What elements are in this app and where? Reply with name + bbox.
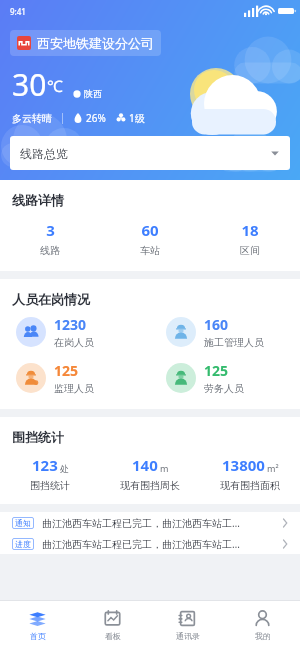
staticText: 车站	[140, 244, 160, 257]
button[interactable]: 125	[16, 361, 150, 395]
staticText: 曲江池西车站工程已完工，曲江池西车站工…	[42, 516, 280, 530]
button[interactable]: 1230	[16, 315, 150, 349]
staticText: m²	[267, 462, 279, 474]
button[interactable]: 我的	[225, 601, 300, 649]
button[interactable]: 线路总览	[10, 136, 290, 170]
staticText: 13800	[222, 455, 265, 475]
staticText: 围挡统计	[30, 479, 70, 492]
staticText: ℃	[47, 75, 63, 97]
staticText: 140	[132, 455, 158, 475]
button[interactable]: 60	[100, 220, 200, 257]
button[interactable]: 160	[166, 315, 300, 349]
staticText: 线路	[40, 244, 60, 257]
button[interactable]: 看板	[75, 601, 150, 649]
staticText: 60	[141, 220, 159, 240]
button[interactable]: 3	[0, 220, 100, 257]
staticText: 陕西	[84, 88, 102, 99]
staticText: 进度	[15, 539, 31, 549]
staticText: 看板	[105, 631, 121, 641]
staticText: 在岗人员	[54, 336, 94, 349]
staticText: 线路总览	[20, 146, 68, 161]
button[interactable]: 通知	[0, 512, 300, 533]
button[interactable]: 首页	[0, 601, 75, 649]
staticText: 18	[241, 220, 259, 240]
staticText: 线路详情	[12, 192, 64, 208]
staticText: 现有围挡周长	[120, 479, 180, 492]
staticText: 125	[204, 361, 229, 380]
button[interactable]: 西安地铁建设分公司	[10, 30, 161, 56]
button[interactable]: 通讯录	[150, 601, 225, 649]
staticText: 现有围挡面积	[220, 479, 280, 492]
staticText: 监理人员	[54, 382, 94, 395]
staticText: 人员在岗情况	[12, 291, 90, 307]
staticText: 1230	[54, 315, 87, 334]
staticText: 3	[46, 220, 55, 240]
staticText: 通讯录	[176, 631, 200, 641]
staticText: 通知	[15, 518, 31, 528]
staticText: 西安地铁建设分公司	[37, 35, 154, 51]
staticText: 施工管理人员	[204, 336, 264, 349]
staticText: 26%	[86, 111, 106, 125]
button[interactable]: 进度	[0, 533, 300, 554]
button[interactable]: 123	[0, 455, 100, 492]
staticText: 处	[60, 463, 69, 474]
staticText: 30	[12, 64, 47, 105]
staticText: 125	[54, 361, 79, 380]
button[interactable]: 140	[100, 455, 200, 492]
staticText: 劳务人员	[204, 382, 244, 395]
staticText: 1级	[129, 111, 145, 125]
button[interactable]: 18	[200, 220, 300, 257]
staticText: 9:41	[10, 6, 26, 17]
staticText: 123	[32, 455, 58, 475]
staticText: 我的	[255, 631, 271, 641]
button[interactable]: 13800	[200, 455, 300, 492]
button[interactable]: 125	[166, 361, 300, 395]
staticText: 多云转晴	[12, 112, 52, 125]
staticText: 围挡统计	[12, 429, 64, 445]
staticText: 曲江池西车站工程已完工，曲江池西车站工…	[42, 537, 280, 551]
staticText: 首页	[30, 631, 46, 641]
staticText: 160	[204, 315, 229, 334]
staticText: m	[160, 462, 169, 474]
staticText: 区间	[240, 244, 260, 257]
